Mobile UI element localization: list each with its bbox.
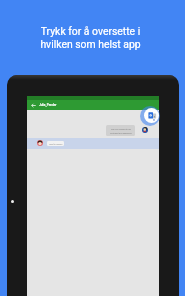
- button[interactable]: Julia_Pender: [27, 100, 159, 110]
- staticText: Julia_Pender: [39, 103, 57, 107]
- staticText: Are you coming to my birthday this weeke…: [110, 128, 132, 134]
- button[interactable]: Translate with Google Translate: [140, 106, 160, 126]
- staticText: Trykk for å oversette i hvilken som hels…: [40, 25, 141, 50]
- button[interactable]: Takk for hjelpen: [27, 138, 159, 149]
- staticText: Takk for hjelpen: [49, 143, 63, 145]
